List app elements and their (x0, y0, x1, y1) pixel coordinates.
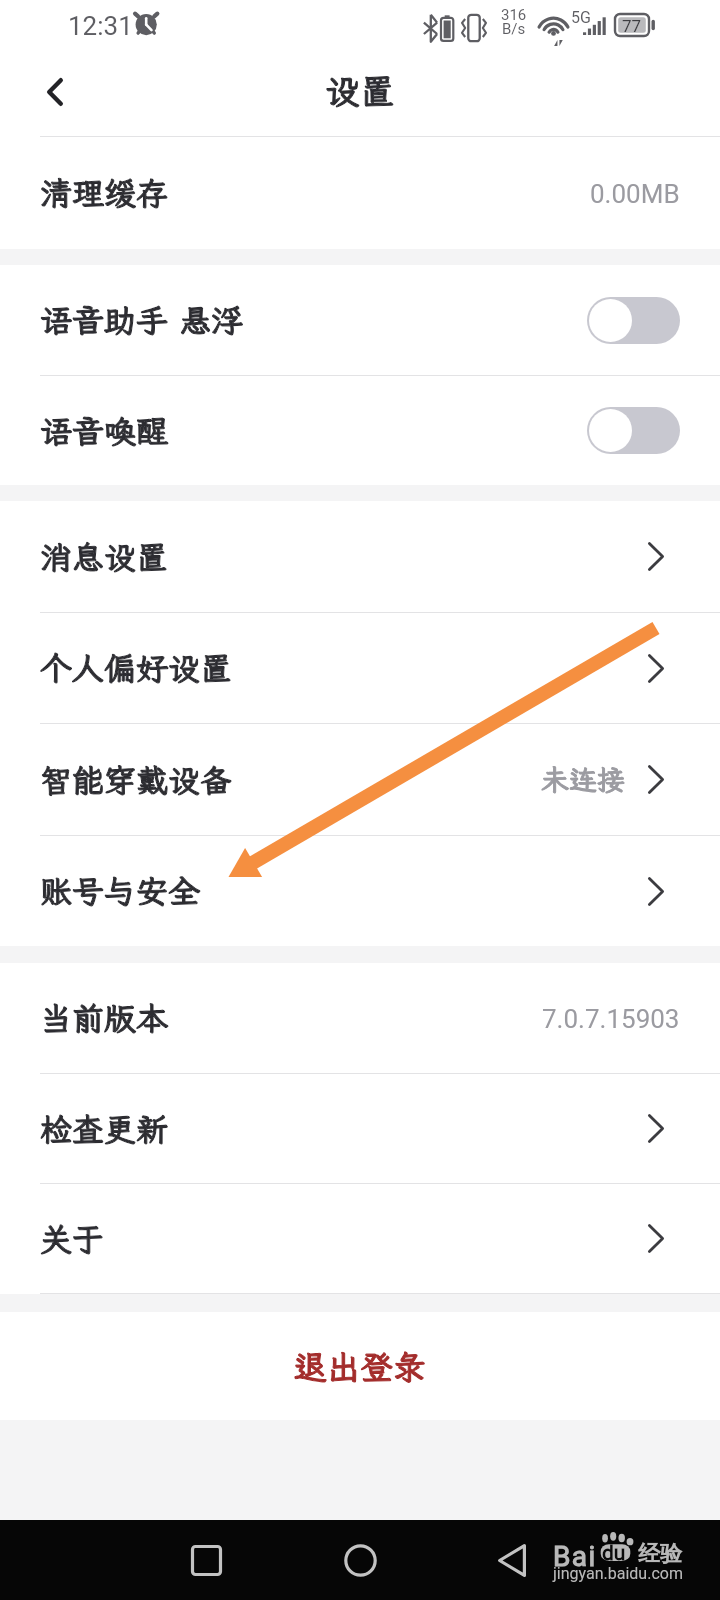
staticText: 检查更新 (40, 1108, 169, 1150)
staticText: 77 (622, 16, 642, 36)
staticText: 语音助手 悬浮 (40, 299, 244, 341)
staticText: 316 (501, 6, 527, 24)
staticText: 设置 (325, 68, 396, 114)
button[interactable]: Recent apps (151, 1520, 261, 1600)
button[interactable]: 个人偏好设置 (0, 613, 720, 723)
staticText: 12:31 (68, 11, 133, 41)
staticText: 0.00MB (590, 179, 680, 209)
staticText: 语音助手 悬浮 (40, 299, 244, 341)
staticText: du (602, 1541, 626, 1566)
staticText: 经验 (638, 1540, 682, 1568)
staticText: 未连接 (541, 761, 626, 798)
button[interactable]: Toggle 语音唤醒 (587, 407, 680, 454)
staticText: 账号与安全 (40, 870, 201, 912)
staticText: 检查更新 (40, 1108, 169, 1150)
staticText: 个人偏好设置 (40, 647, 233, 689)
button[interactable]: 当前版本 (0, 963, 720, 1073)
button[interactable]: Back (457, 1520, 567, 1600)
button[interactable]: 退出登录 (0, 1312, 720, 1420)
staticText: 关于 (40, 1218, 105, 1260)
button[interactable]: 语音唤醒 (0, 376, 720, 485)
button[interactable]: Back (0, 58, 110, 136)
staticText: 清理缓存 (40, 172, 169, 214)
staticText: jingyan.baidu.com (553, 1564, 683, 1583)
staticText: 5G (571, 8, 591, 27)
staticText: 语音唤醒 (40, 410, 169, 452)
staticText: 清理缓存 (40, 172, 169, 214)
staticText: 智能穿戴设备 (40, 759, 233, 801)
staticText: 语音唤醒 (40, 410, 169, 452)
staticText: 7.0.7.15903 (542, 1004, 680, 1034)
button[interactable]: Home (305, 1520, 415, 1600)
staticText: 关于 (40, 1218, 105, 1260)
button[interactable]: 消息设置 (0, 501, 720, 612)
staticText: Bai (553, 1540, 597, 1573)
staticText: 设置 (325, 68, 396, 114)
staticText: 智能穿戴设备 (40, 759, 233, 801)
button[interactable]: 关于 (0, 1184, 720, 1293)
staticText: 退出登录 (294, 1345, 426, 1388)
button[interactable]: 语音助手 悬浮 (0, 265, 720, 375)
staticText: B/s (502, 20, 526, 38)
staticText: 当前版本 (40, 997, 169, 1039)
button[interactable]: 清理缓存 (0, 137, 720, 249)
staticText: 消息设置 (40, 536, 169, 578)
staticText: 账号与安全 (40, 870, 201, 912)
staticText: 个人偏好设置 (40, 647, 233, 689)
button[interactable]: 账号与安全 (0, 836, 720, 946)
button[interactable]: Toggle 语音助手 悬浮 (587, 297, 680, 344)
button[interactable]: 检查更新 (0, 1074, 720, 1183)
staticText: 未连接 (541, 761, 626, 798)
button[interactable]: 智能穿戴设备 (0, 724, 720, 835)
staticText: 退出登录 (294, 1345, 426, 1388)
staticText: 消息设置 (40, 536, 169, 578)
staticText: 当前版本 (40, 997, 169, 1039)
